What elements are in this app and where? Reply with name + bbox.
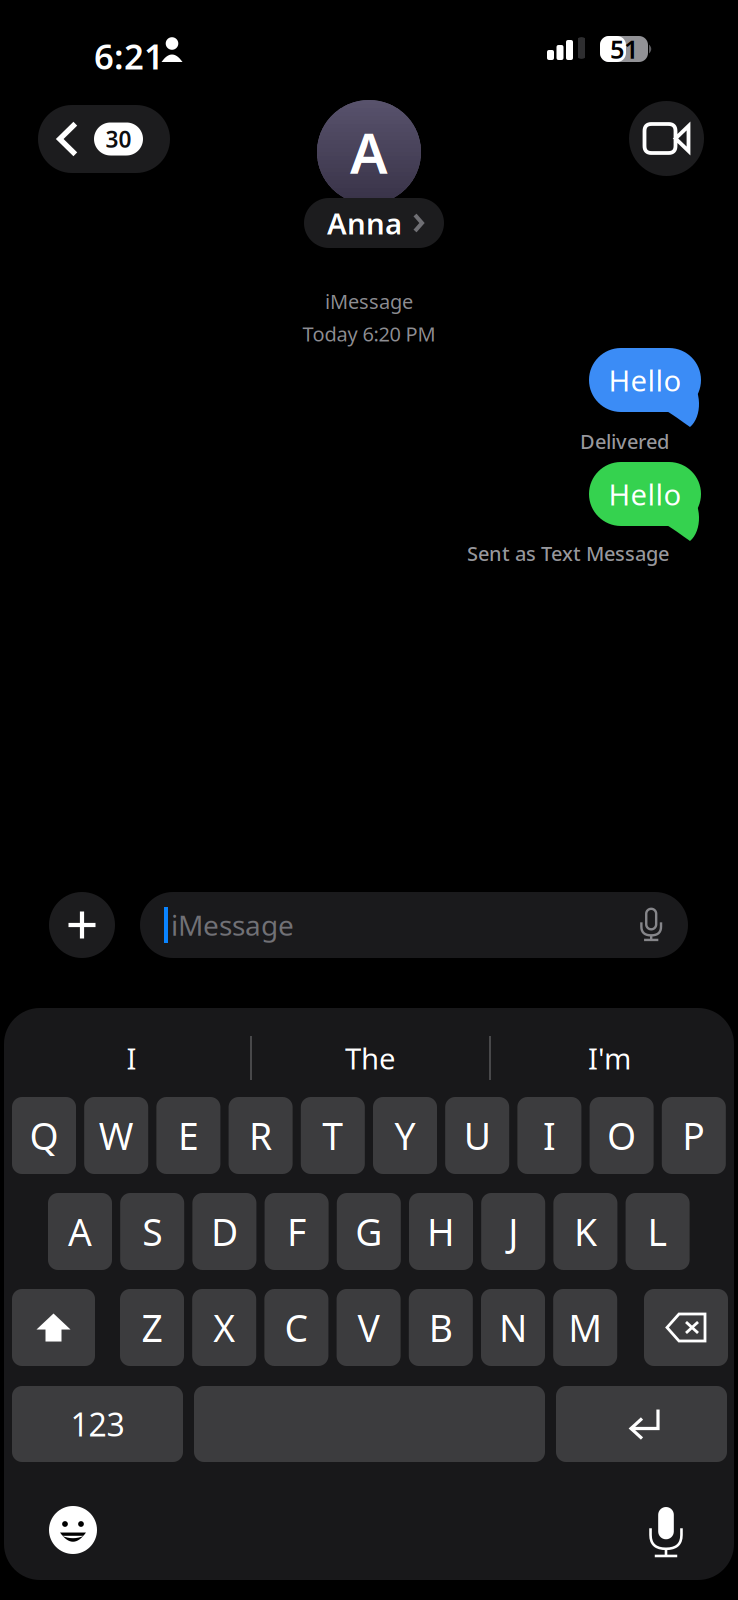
staticText: B [429,1303,453,1352]
button[interactable]: R [229,1097,293,1174]
staticText: E [178,1111,199,1160]
staticText: Hello [608,474,681,513]
button[interactable]: H [409,1193,473,1270]
button[interactable]: A [48,1193,112,1270]
button[interactable]: X [192,1289,256,1366]
button[interactable]: T [301,1097,365,1174]
staticText: The [345,1038,396,1077]
button[interactable]: I'm [491,1026,728,1090]
staticText: 6:21 [94,33,164,79]
button[interactable]: 123 [12,1386,183,1462]
staticText: P [682,1111,705,1160]
staticText: S [142,1207,162,1256]
staticText: O [607,1111,636,1160]
staticText: Hello [608,360,681,399]
button[interactable]: J [481,1193,545,1270]
button[interactable]: Message field [140,892,688,958]
button[interactable]: E [156,1097,220,1174]
staticText: Q [29,1111,58,1160]
button[interactable]: I [13,1026,250,1090]
button[interactable]: FaceTime [629,101,704,176]
button[interactable]: O [590,1097,654,1174]
staticText: 51 [610,32,638,66]
staticText: M [568,1303,602,1352]
staticText: Anna [327,203,402,242]
staticText: N [499,1303,527,1352]
staticText: A [350,115,388,189]
staticText: iMessage [171,906,294,944]
staticText: T [322,1111,343,1160]
button[interactable]: The [252,1026,489,1090]
button[interactable]: W [84,1097,148,1174]
button[interactable]: I [517,1097,581,1174]
staticText: G [355,1207,382,1256]
button[interactable]: Add attachment [49,892,115,958]
staticText: R [249,1111,272,1160]
staticText: Y [394,1111,415,1160]
staticText: C [284,1303,308,1352]
button[interactable]: Return [556,1386,727,1462]
staticText: Delivered [580,428,669,455]
button[interactable]: P [662,1097,726,1174]
staticText: W [99,1111,134,1160]
button[interactable]: U [445,1097,509,1174]
button[interactable]: Q [12,1097,76,1174]
button[interactable]: F [265,1193,329,1270]
button[interactable]: S [120,1193,184,1270]
button[interactable]: L [626,1193,690,1270]
button[interactable]: Delete [644,1289,728,1366]
button[interactable]: M [553,1289,617,1366]
button[interactable]: Y [373,1097,437,1174]
button[interactable]: V [337,1289,401,1366]
button[interactable]: Back, 30 unread [38,105,170,173]
staticText: L [648,1207,668,1256]
button[interactable]: B [409,1289,473,1366]
staticText: F [287,1207,306,1256]
staticText: X [213,1303,235,1352]
staticText: J [508,1207,518,1256]
staticText: U [464,1111,491,1160]
button[interactable]: Emoji [49,1506,97,1554]
staticText: Z [141,1303,162,1352]
button[interactable]: G [337,1193,401,1270]
button[interactable]: D [192,1193,256,1270]
staticText: iMessage [325,288,413,315]
staticText: K [574,1207,597,1256]
staticText: I [543,1111,556,1160]
staticText: A [68,1207,92,1256]
staticText: 123 [70,1403,124,1445]
button[interactable]: C [264,1289,328,1366]
button[interactable]: N [481,1289,545,1366]
staticText: 30 [105,124,131,154]
staticText: I [126,1038,136,1078]
staticText: H [427,1207,455,1256]
staticText: Today 6:20 PM [302,321,435,347]
staticText: Sent as Text Message [467,540,669,567]
button[interactable]: Anna, contact details [304,198,444,248]
button[interactable]: Dictate [649,1507,683,1558]
button[interactable]: K [553,1193,617,1270]
button[interactable]: Shift [12,1289,95,1366]
staticText: I'm [588,1038,631,1077]
button[interactable]: Z [120,1289,184,1366]
staticText: V [358,1303,380,1352]
staticText: D [211,1207,238,1256]
